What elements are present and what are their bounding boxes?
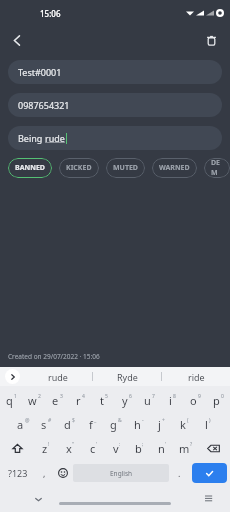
- staticText: x: [66, 441, 72, 456]
- button[interactable]: j: [150, 412, 173, 436]
- button[interactable]: ride: [162, 367, 230, 386]
- button[interactable]: r: [69, 388, 92, 412]
- button[interactable]: DEMO: [204, 158, 230, 178]
- staticText: .: [178, 467, 181, 479]
- staticText: ": [72, 441, 75, 448]
- button[interactable]: u: [138, 388, 161, 412]
- button[interactable]: i: [161, 388, 184, 412]
- staticText: KICKED: [66, 163, 92, 173]
- staticText: m: [179, 441, 190, 456]
- button[interactable]: MUTED: [106, 158, 145, 178]
- button[interactable]: w: [23, 388, 46, 412]
- staticText: &: [118, 417, 122, 424]
- staticText: Ryde: [117, 371, 138, 383]
- staticText: 7: [152, 393, 155, 400]
- button[interactable]: 0987654321: [8, 93, 222, 117]
- button[interactable]: Keyboard settings: [202, 492, 216, 506]
- staticText: 9: [198, 393, 201, 400]
- button[interactable]: KICKED: [59, 158, 99, 178]
- button[interactable]: Done: [192, 463, 227, 483]
- staticText: Test#0001: [18, 66, 62, 78]
- staticText: ': [96, 441, 98, 448]
- staticText: e: [52, 393, 59, 408]
- staticText: r: [76, 393, 81, 408]
- staticText: MUTED: [113, 163, 138, 173]
- staticText: c: [90, 441, 96, 456]
- staticText: t: [100, 393, 104, 408]
- button[interactable]: Being: [8, 126, 222, 150]
- staticText: g: [110, 417, 117, 432]
- staticText: English: [110, 469, 133, 478]
- button[interactable]: Period: [169, 460, 189, 486]
- button[interactable]: z: [34, 436, 58, 460]
- button[interactable]: v: [105, 436, 128, 460]
- button[interactable]: a: [11, 412, 35, 436]
- button[interactable]: m: [174, 436, 197, 460]
- button[interactable]: Shift: [0, 436, 34, 460]
- button[interactable]: More suggestions: [5, 369, 20, 384]
- button[interactable]: e: [46, 388, 69, 412]
- button[interactable]: ?123: [0, 460, 35, 486]
- button[interactable]: Emoji: [53, 460, 73, 486]
- button[interactable]: Hide keyboard: [30, 491, 46, 507]
- staticText: 2: [38, 393, 41, 400]
- button[interactable]: Comma: [35, 460, 53, 486]
- staticText: _: [94, 417, 97, 424]
- button[interactable]: WARNED: [152, 158, 197, 178]
- button[interactable]: Delete: [198, 27, 224, 53]
- button[interactable]: o: [184, 388, 207, 412]
- staticText: ;: [142, 441, 144, 448]
- staticText: rude: [45, 132, 65, 144]
- staticText: rude: [48, 371, 68, 383]
- button[interactable]: l: [196, 412, 219, 436]
- staticText: v: [113, 441, 119, 456]
- button[interactable]: t: [92, 388, 115, 412]
- staticText: +: [162, 417, 165, 424]
- staticText: !: [48, 441, 50, 448]
- button[interactable]: p: [207, 388, 230, 412]
- button[interactable]: d: [58, 412, 81, 436]
- button[interactable]: c: [82, 436, 105, 460]
- staticText: BANNED: [15, 163, 45, 173]
- staticText: h: [134, 417, 141, 432]
- staticText: Being: [18, 132, 45, 144]
- staticText: 0: [221, 393, 224, 400]
- button[interactable]: q: [0, 388, 23, 412]
- button[interactable]: h: [127, 412, 150, 436]
- staticText: :: [119, 441, 121, 448]
- button[interactable]: s: [35, 412, 58, 436]
- staticText: s: [41, 417, 47, 432]
- button[interactable]: f: [81, 412, 104, 436]
- button[interactable]: g: [104, 412, 127, 436]
- staticText: DEMO: [211, 158, 223, 178]
- staticText: -: [142, 417, 144, 424]
- button[interactable]: n: [151, 436, 174, 460]
- staticText: q: [6, 393, 13, 408]
- staticText: (: [187, 417, 189, 424]
- staticText: u: [144, 393, 151, 408]
- button[interactable]: Ryde: [93, 367, 161, 386]
- button[interactable]: Backspace: [197, 436, 230, 460]
- staticText: l: [205, 417, 208, 432]
- button[interactable]: k: [173, 412, 196, 436]
- button[interactable]: b: [128, 436, 151, 460]
- button[interactable]: x: [58, 436, 82, 460]
- staticText: o: [190, 393, 197, 408]
- staticText: 4: [82, 393, 85, 400]
- staticText: 0987654321: [18, 99, 70, 111]
- button[interactable]: Test#0001: [8, 60, 222, 84]
- staticText: n: [158, 441, 165, 456]
- staticText: 15:06: [40, 8, 61, 19]
- staticText: ?: [190, 441, 193, 448]
- staticText: ': [165, 441, 167, 448]
- button[interactable]: English: [73, 464, 169, 482]
- button[interactable]: Back: [4, 27, 30, 53]
- button[interactable]: BANNED: [8, 158, 52, 178]
- staticText: 3: [60, 393, 63, 400]
- staticText: w: [28, 393, 37, 408]
- staticText: 1: [14, 393, 17, 400]
- staticText: b: [135, 441, 142, 456]
- staticText: WARNED: [159, 163, 190, 173]
- button[interactable]: rude: [24, 367, 92, 386]
- button[interactable]: y: [115, 388, 138, 412]
